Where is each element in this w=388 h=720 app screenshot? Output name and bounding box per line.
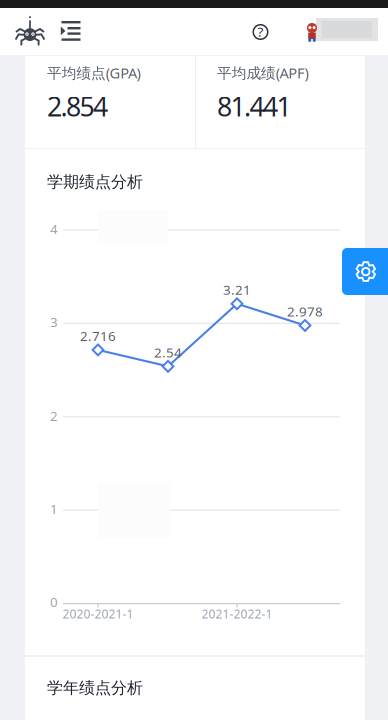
staticText: 平均绩点(GPA) [47,63,141,82]
button[interactable]: Help [249,21,271,43]
button[interactable]: Account [306,18,384,52]
staticText: 4 [50,220,58,238]
staticText: 2.54 [154,343,182,361]
staticText: 2.716 [80,327,116,345]
staticText: 2.978 [287,302,323,320]
staticText: 81.441 [217,88,291,124]
staticText: 2020-2021-1 [62,606,133,622]
staticText: 1 [50,500,58,518]
staticText: 3.21 [223,281,251,298]
button[interactable]: Home [13,13,47,47]
button[interactable]: Settings [342,248,388,295]
staticText: 0 [50,593,58,611]
staticText: 3 [50,313,58,331]
staticText: 平均成绩(APF) [217,63,309,82]
staticText: ? [257,23,263,40]
staticText: 学期绩点分析 [47,172,143,192]
staticText: 学年绩点分析 [47,678,143,698]
staticText: 2021-2022-1 [201,606,272,622]
button[interactable]: Menu [57,17,85,45]
staticText: 2.854 [47,88,108,124]
staticText: 2 [50,407,58,425]
